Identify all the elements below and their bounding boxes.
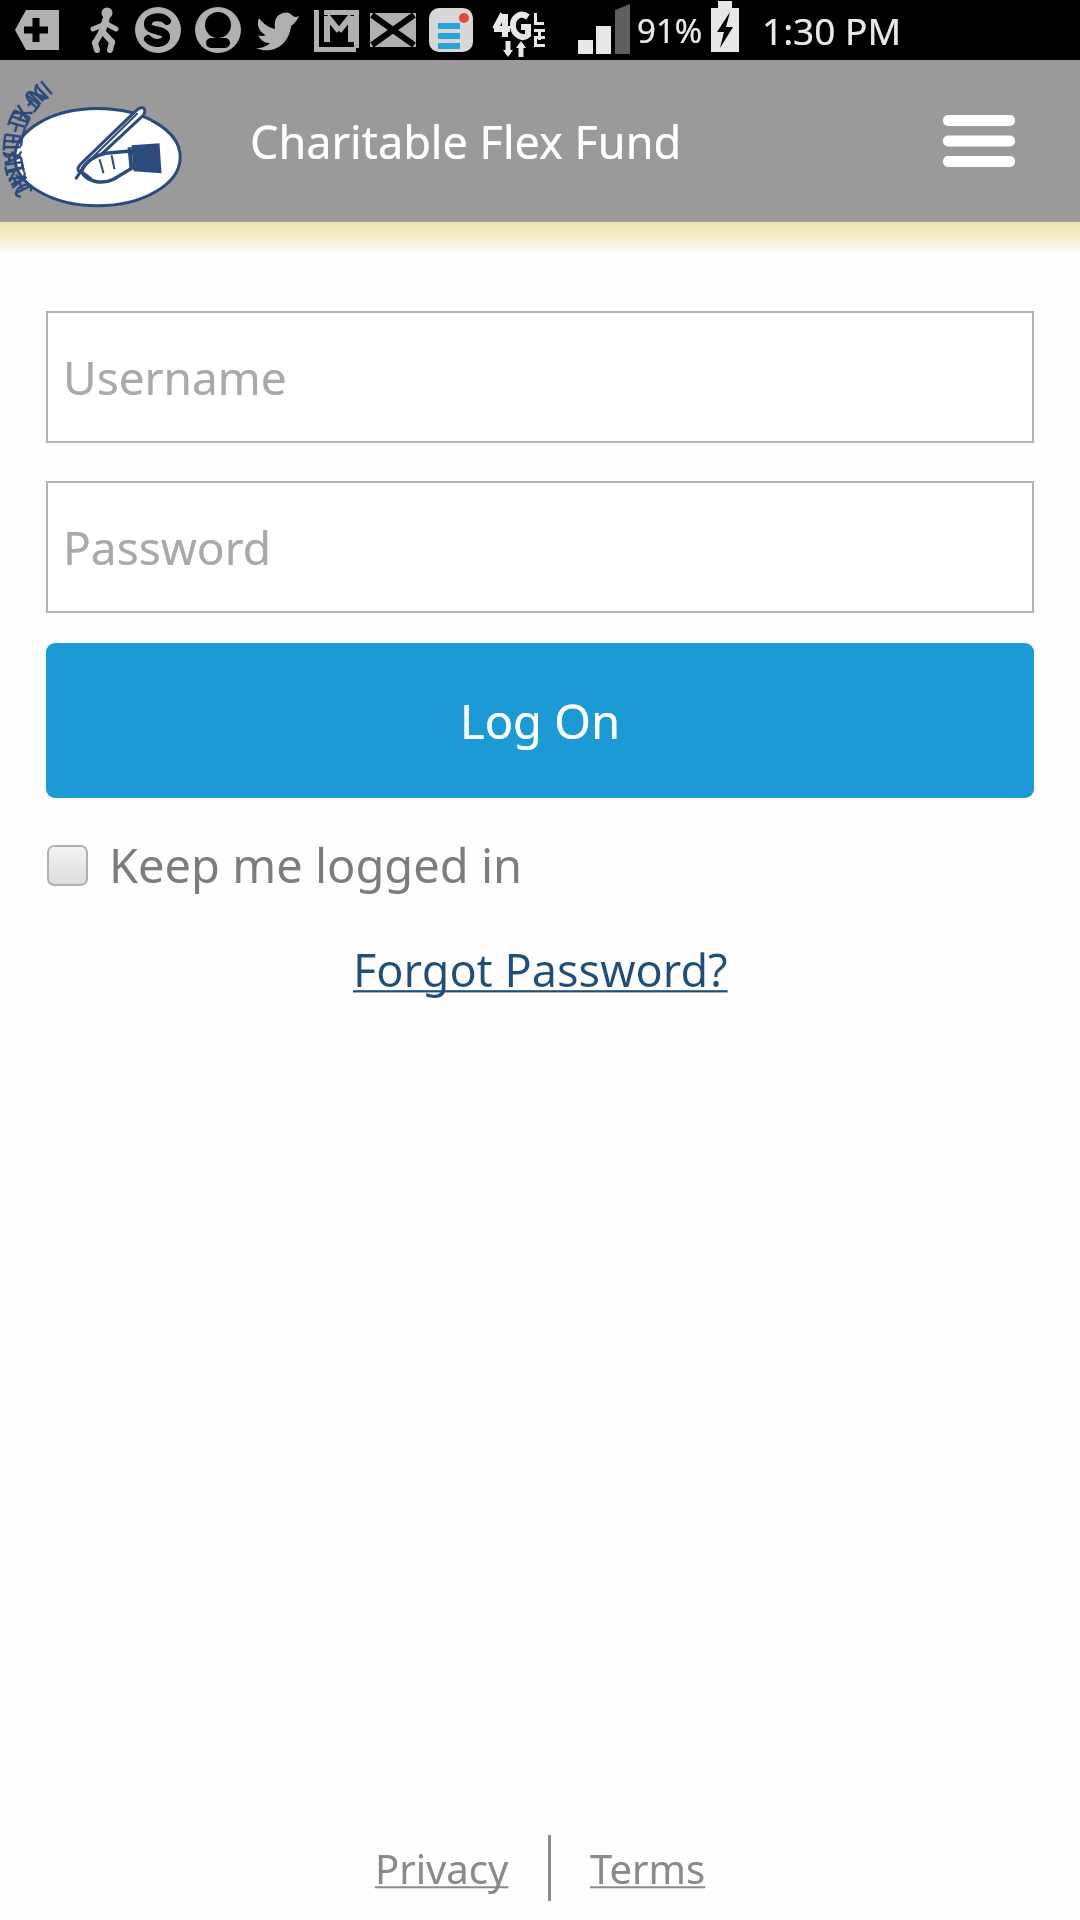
staticText: Keep me logged in	[109, 833, 523, 897]
button[interactable]: Privacy	[375, 1841, 509, 1895]
button[interactable]: Log On	[46, 643, 1034, 798]
button[interactable]: Terms	[590, 1841, 706, 1895]
staticText: Charitable Flex Fund	[250, 111, 682, 172]
staticText: 91%	[637, 8, 703, 53]
staticText: Username	[63, 346, 287, 409]
button[interactable]: Password	[46, 481, 1034, 613]
button[interactable]: Forgot Password?	[353, 939, 728, 1000]
staticText: Forgot Password?	[353, 939, 728, 1000]
button[interactable]: Menu	[924, 86, 1034, 196]
button[interactable]: Keep me logged in	[47, 833, 523, 897]
staticText: Password	[63, 516, 272, 579]
staticText: 1:30 PM	[762, 5, 901, 55]
staticText: Terms	[590, 1841, 706, 1895]
button[interactable]: Username	[46, 311, 1034, 443]
staticText: Privacy	[375, 1841, 509, 1895]
staticText: Log On	[460, 689, 620, 753]
